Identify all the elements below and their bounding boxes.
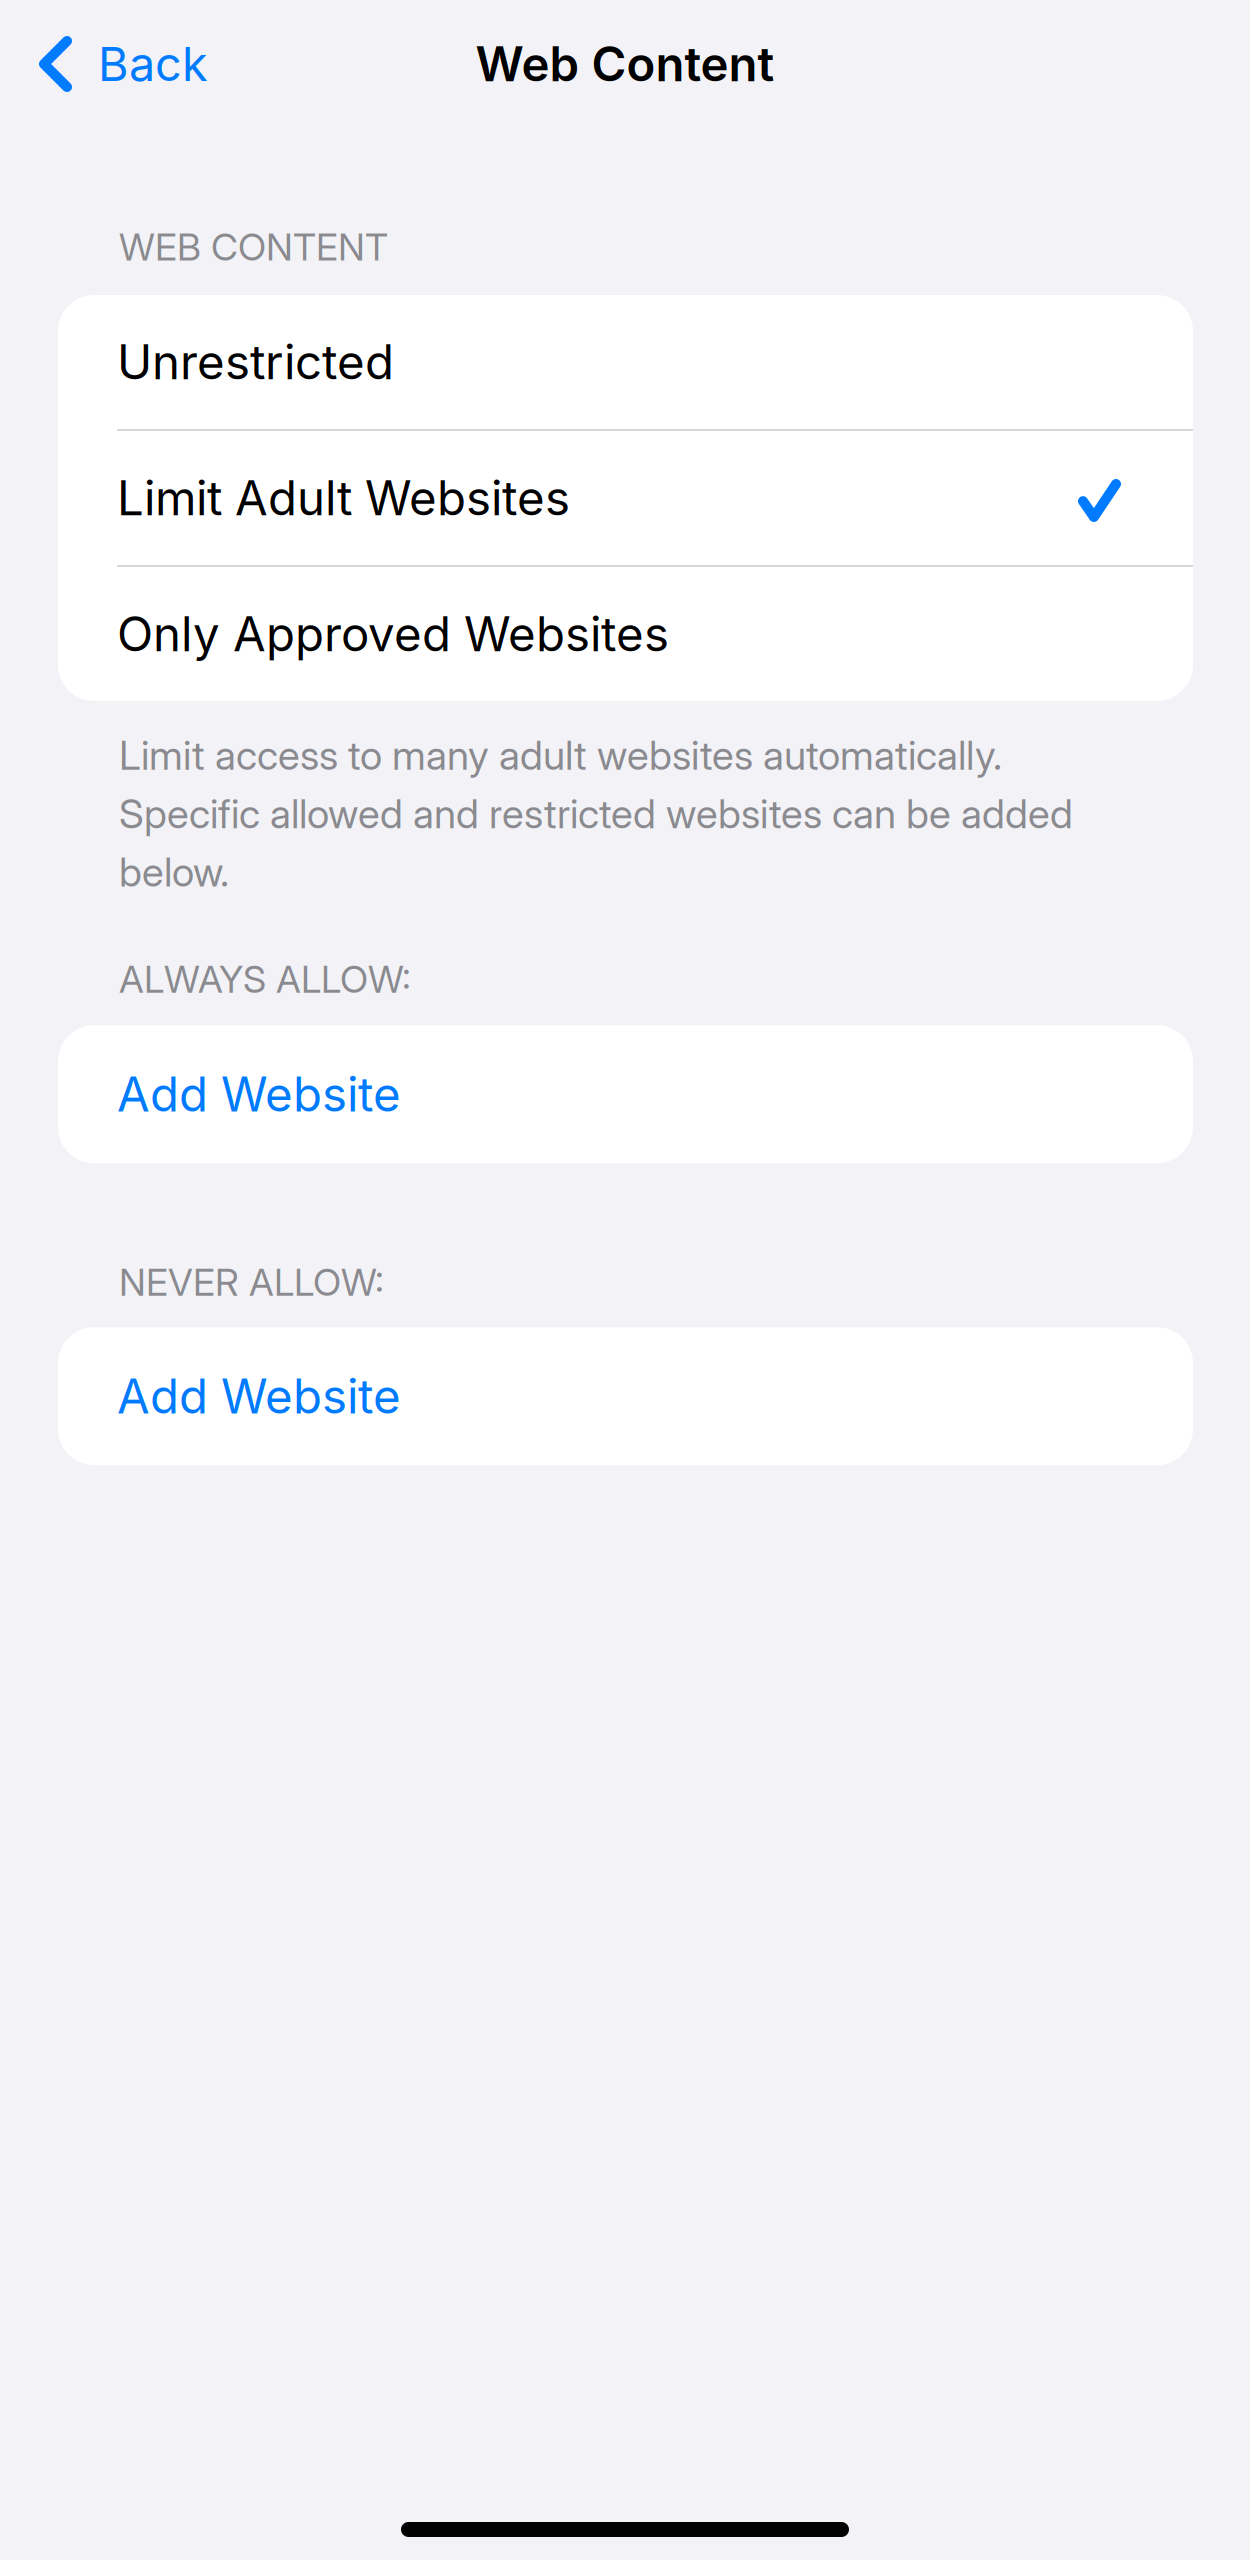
staticText: Limit Adult Websites bbox=[117, 469, 570, 527]
button[interactable]: Only Approved Websites bbox=[58, 567, 1193, 701]
staticText: WEB CONTENT bbox=[119, 224, 388, 270]
button[interactable]: Add Website bbox=[58, 1327, 1193, 1465]
button[interactable]: Back bbox=[0, 0, 208, 128]
staticText: Add Website bbox=[117, 1066, 401, 1123]
staticText: Web Content bbox=[475, 35, 774, 93]
button[interactable]: Add Website bbox=[58, 1025, 1193, 1163]
staticText: Unrestricted bbox=[117, 333, 394, 391]
button[interactable]: Limit Adult Websites bbox=[58, 431, 1193, 565]
staticText: NEVER ALLOW: bbox=[119, 1260, 384, 1305]
staticText: Limit access to many adult websites auto… bbox=[119, 731, 1073, 896]
staticText: ALWAYS ALLOW: bbox=[119, 957, 411, 1002]
staticText: Only Approved Websites bbox=[117, 605, 669, 663]
button[interactable]: Unrestricted bbox=[58, 295, 1193, 429]
staticText: Add Website bbox=[117, 1368, 401, 1425]
staticText: Back bbox=[98, 36, 208, 92]
